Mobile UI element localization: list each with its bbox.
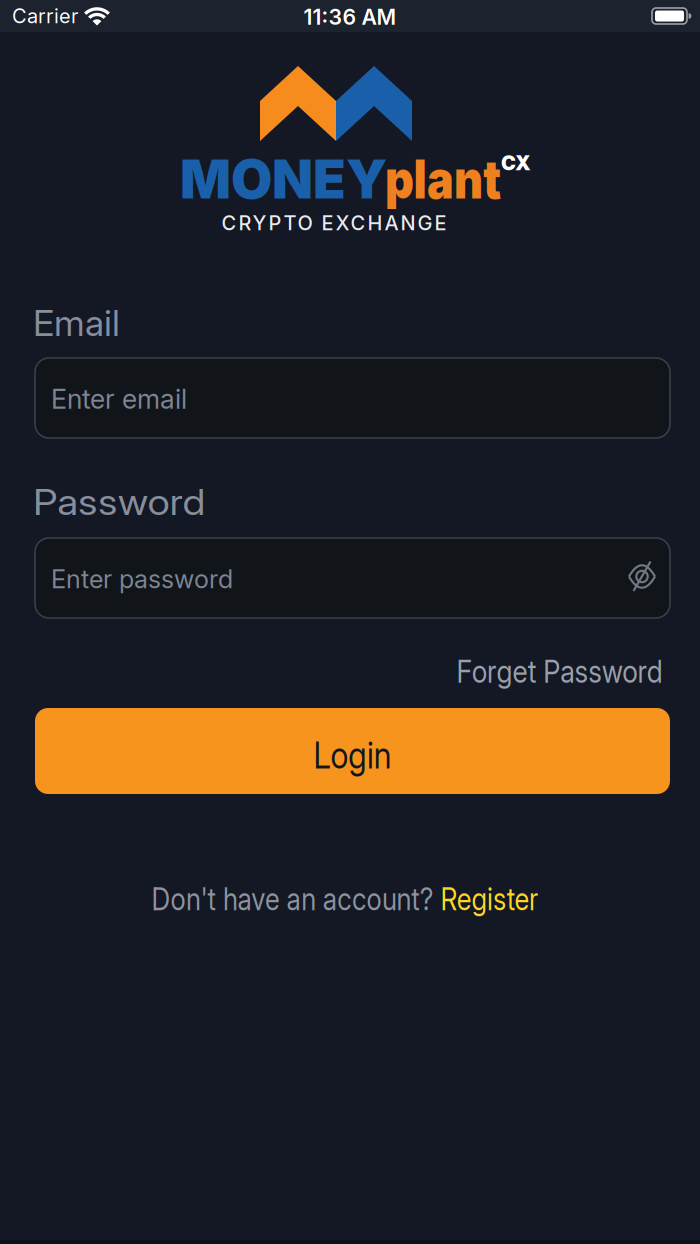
button[interactable]: Password, secure text field (35, 538, 670, 618)
staticText: 11:36 AM (303, 4, 396, 30)
staticText: Enter password (51, 564, 233, 594)
staticText: CRYPTO EXCHANGE (221, 211, 446, 235)
staticText: Login (306, 733, 398, 777)
staticText: CX (501, 151, 531, 175)
staticText: Register (456, 881, 570, 917)
staticText: Password (33, 481, 190, 523)
button[interactable]: Forget Password (420, 652, 663, 690)
staticText: Carrier (12, 4, 78, 28)
button[interactable]: Show password (620, 555, 664, 599)
staticText: plant (374, 147, 512, 210)
staticText: Don't have an account? (120, 881, 456, 917)
staticText: Enter email (51, 383, 187, 415)
staticText: Email (33, 302, 120, 344)
button[interactable]: Register (456, 881, 570, 917)
staticText: MONEY (180, 147, 387, 210)
staticText: Forget Password (420, 652, 663, 690)
button[interactable]: Email, text field (35, 358, 670, 438)
button[interactable]: Login (35, 708, 670, 794)
